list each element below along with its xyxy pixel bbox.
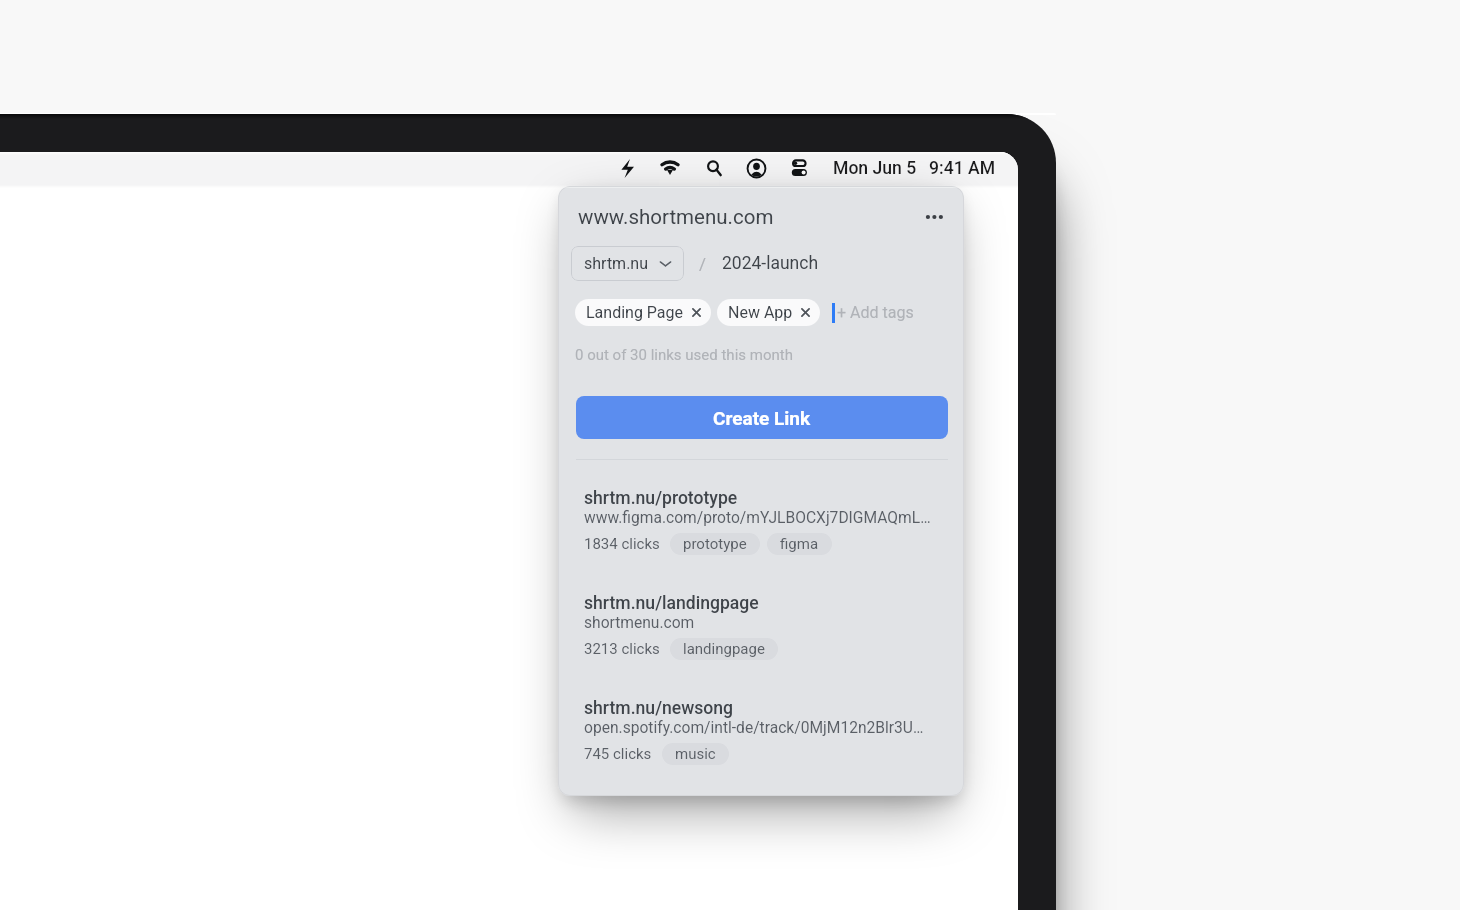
button[interactable]: shrtm.nu/landingpage: [558, 591, 964, 666]
staticText: New App: [728, 303, 793, 322]
staticText: + Add tags: [837, 303, 914, 322]
staticText: 1834 clicks: [584, 535, 660, 553]
staticText: www.figma.com/proto/mYJLBOCXj7DIGMAQmL…: [584, 509, 931, 527]
staticText: open.spotify.com/intl-de/track/0MjM12n2B…: [584, 719, 924, 737]
button[interactable]: Search: [700, 155, 726, 181]
button[interactable]: Mon Jun 5: [833, 157, 996, 180]
staticText: music: [675, 745, 716, 763]
button[interactable]: New App: [717, 299, 820, 326]
staticText: 0 out of 30 links used this month: [575, 346, 793, 364]
button[interactable]: Landing Page: [575, 299, 711, 326]
staticText: shortmenu.com: [584, 614, 695, 632]
staticText: 9:41 AM: [929, 158, 996, 179]
staticText: Landing Page: [586, 303, 684, 322]
staticText: 745 clicks: [584, 745, 652, 763]
button[interactable]: Control Center: [786, 155, 812, 181]
button[interactable]: figma: [767, 533, 832, 555]
button[interactable]: shrtm.nu/newsong: [558, 696, 964, 771]
staticText: shrtm.nu/landingpage: [584, 593, 759, 614]
button[interactable]: prototype: [670, 533, 760, 555]
staticText: Mon Jun 5: [833, 158, 917, 179]
button[interactable]: Account: [743, 155, 769, 181]
staticText: landingpage: [683, 640, 765, 658]
button[interactable]: Wi-Fi: [657, 155, 683, 181]
staticText: www.shortmenu.com: [578, 205, 774, 229]
staticText: Create Link: [713, 407, 811, 429]
button[interactable]: music: [662, 743, 729, 765]
button[interactable]: Create Link: [576, 396, 948, 439]
staticText: figma: [780, 535, 819, 553]
button[interactable]: More options: [921, 203, 949, 231]
staticText: /: [699, 254, 707, 274]
button[interactable]: + Add tags: [832, 299, 914, 326]
button[interactable]: landingpage: [670, 638, 778, 660]
staticText: shrtm.nu/newsong: [584, 698, 734, 719]
staticText: shrtm.nu/prototype: [584, 488, 738, 509]
staticText: 2024-launch: [722, 253, 819, 274]
button[interactable]: shrtm.nu: [571, 246, 684, 281]
staticText: prototype: [683, 535, 747, 553]
button[interactable]: shrtm.nu/prototype: [558, 486, 964, 561]
button[interactable]: Battery: [615, 155, 641, 181]
staticText: shrtm.nu: [584, 254, 649, 273]
staticText: 3213 clicks: [584, 640, 660, 658]
